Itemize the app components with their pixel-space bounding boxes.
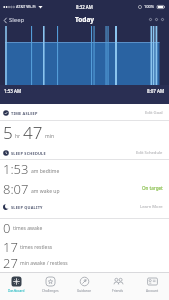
staticText: 27 (3, 254, 18, 268)
staticText: Today (75, 15, 95, 24)
staticText: On target (142, 185, 163, 191)
staticText: SLEEP SCHEDULE (11, 151, 46, 156)
staticText: min awake / restless (20, 260, 68, 267)
staticText: 1:53 (3, 160, 29, 176)
button[interactable]: Sleep (3, 16, 25, 24)
staticText: 47 (23, 121, 43, 141)
staticText: Edit Goal (145, 110, 163, 116)
button[interactable]: Friends (101, 273, 135, 300)
button[interactable]: Guidance (67, 273, 101, 300)
staticText: Dashboard (8, 289, 25, 293)
button[interactable]: Account (135, 273, 169, 300)
staticText: Learn More (140, 204, 163, 210)
staticText: Account (146, 289, 159, 293)
staticText: Challenges (42, 289, 59, 293)
staticText: 8:07 (3, 180, 29, 196)
button[interactable]: On target (142, 185, 163, 191)
staticText: SLEEP QUALITY (11, 205, 43, 210)
button[interactable]: Edit Schedule (136, 150, 163, 156)
staticText: TIME ASLEEP (11, 111, 38, 116)
staticText: 17 (3, 238, 18, 252)
staticText: hr (15, 133, 21, 140)
staticText: 0 (3, 219, 11, 233)
staticText: 1:53 AM (4, 88, 22, 94)
staticText: Friends (112, 289, 124, 293)
staticText: am bedtime (31, 168, 60, 175)
button[interactable]: Dashboard (0, 273, 33, 300)
button[interactable]: Learn More (140, 204, 163, 210)
button[interactable]: Challenges (33, 273, 67, 300)
button[interactable]: Edit Goal (145, 110, 163, 116)
staticText: 100% (144, 4, 155, 9)
staticText: times awake (13, 225, 43, 232)
staticText: 8:07 AM (147, 88, 165, 94)
staticText: Sleep (9, 16, 25, 24)
staticText: min (45, 133, 55, 140)
staticText: am wake up (31, 188, 60, 195)
staticText: 8:32 AM (76, 4, 93, 10)
button[interactable] (149, 18, 164, 21)
staticText: Edit Schedule (136, 150, 163, 156)
staticText: 5 (3, 121, 13, 141)
staticText: Guidance (77, 289, 92, 293)
staticText: AT&T Wi-Fi (16, 4, 36, 9)
staticText: times restless (20, 244, 53, 251)
